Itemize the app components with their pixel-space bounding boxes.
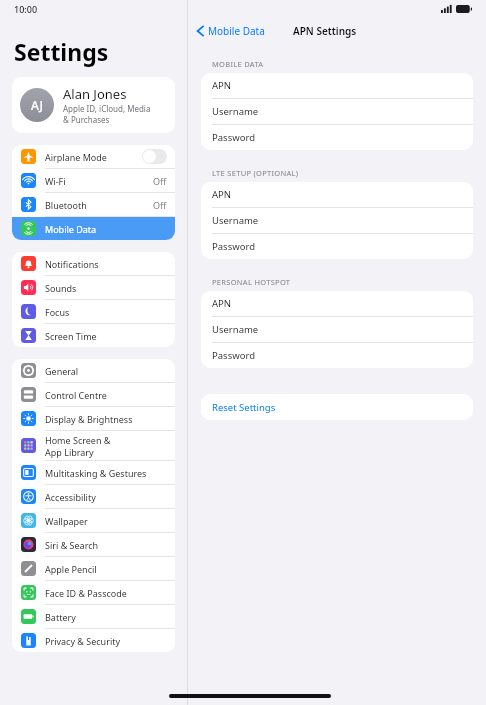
staticText: Off [153,175,167,187]
button[interactable]: Focus [12,300,175,323]
staticText: Screen Time [45,330,97,342]
staticText: AJ [31,97,43,113]
staticText: Home Screen & [45,434,111,446]
staticText: Mobile Data [45,223,97,235]
staticText: Username [212,105,259,118]
staticText: Face ID & Passcode [45,587,127,599]
button[interactable]: Apple Pencil [12,557,175,580]
button[interactable]: Wi-Fi [12,169,175,192]
staticText: APN [212,79,232,92]
staticText: Mobile Data [208,24,265,38]
staticText: APN [212,297,232,310]
staticText: Username [212,323,259,336]
button[interactable]: Notifications [12,252,175,275]
button[interactable]: Home Screen & [12,431,175,460]
button[interactable]: Password [201,343,473,368]
button[interactable]: Sounds [12,276,175,299]
staticText: Battery [45,611,76,623]
button[interactable]: Airplane Mode [12,145,175,168]
staticText: LTE SETUP (OPTIONAL) [212,168,299,178]
staticText: Alan Jones [63,85,127,103]
staticText: Password [212,240,255,253]
button[interactable]: Username [201,99,473,124]
staticText: Notifications [45,258,99,270]
staticText: Control Centre [45,389,107,401]
button[interactable]: Siri & Search [12,533,175,556]
staticText: & Purchases [63,114,110,125]
staticText: General [45,365,79,377]
staticText: MOBILE DATA [212,59,264,69]
staticText: Wi-Fi [45,175,66,187]
staticText: Accessibility [45,491,96,503]
button[interactable]: Battery [12,605,175,628]
button[interactable]: Airplane Mode toggle [142,149,167,164]
staticText: PERSONAL HOTSPOT [212,277,291,287]
staticText: Off [153,199,167,211]
staticText: Wallpaper [45,515,88,527]
staticText: Username [212,214,259,227]
staticText: Bluetooth [45,199,87,211]
staticText: Password [212,349,255,362]
staticText: Multitasking & Gestures [45,467,147,479]
staticText: APN [212,188,232,201]
button[interactable]: Display & Brightness [12,407,175,430]
button[interactable]: Multitasking & Gestures [12,461,175,484]
button[interactable]: General [12,359,175,382]
button[interactable]: Password [201,234,473,259]
button[interactable]: Screen Time [12,324,175,347]
staticText: App Library [45,446,94,458]
staticText: 10:00 [14,3,38,15]
staticText: Sounds [45,282,77,294]
staticText: Reset Settings [212,401,276,414]
button[interactable]: Bluetooth [12,193,175,216]
staticText: APN Settings [293,24,357,38]
button[interactable]: Accessibility [12,485,175,508]
button[interactable]: Username [201,208,473,233]
button[interactable]: Wallpaper [12,509,175,532]
button[interactable]: AJ [12,77,175,133]
staticText: Apple Pencil [45,563,97,575]
button[interactable]: Privacy & Security [12,629,175,652]
button[interactable]: Reset Settings [201,394,473,420]
staticText: Settings [14,36,109,67]
button[interactable]: Face ID & Passcode [12,581,175,604]
button[interactable]: Mobile Data [188,21,271,41]
button[interactable]: Password [201,125,473,150]
button[interactable]: APN [201,291,473,316]
button[interactable]: Username [201,317,473,342]
button[interactable]: APN [201,73,473,98]
button[interactable]: Mobile Data [12,217,175,240]
staticText: Apple ID, iCloud, Media [63,103,151,114]
button[interactable]: APN [201,182,473,207]
staticText: Password [212,131,255,144]
staticText: Display & Brightness [45,413,133,425]
staticText: Airplane Mode [45,151,107,163]
staticText: Siri & Search [45,539,99,551]
staticText: Focus [45,306,70,318]
button[interactable]: Control Centre [12,383,175,406]
staticText: Privacy & Security [45,635,121,647]
